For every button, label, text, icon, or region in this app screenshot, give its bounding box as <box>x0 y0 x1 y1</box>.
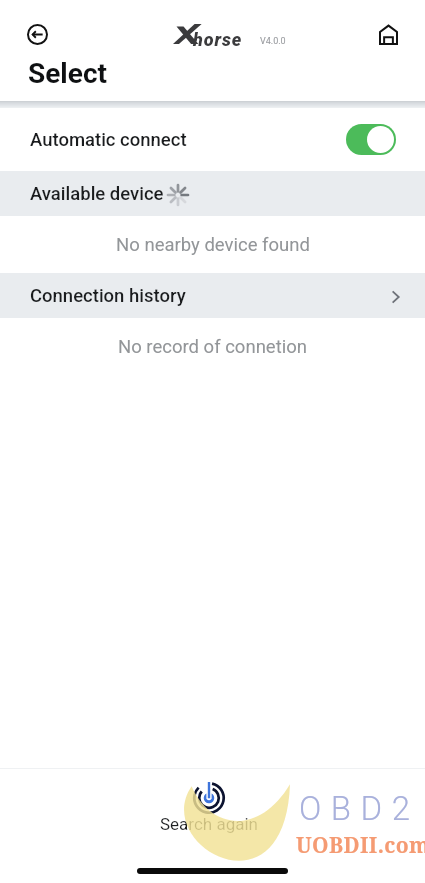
staticText: horse <box>193 29 243 50</box>
button[interactable]: Connection history <box>0 273 425 318</box>
staticText: Automatic connect <box>30 129 187 151</box>
button[interactable]: Automatic connect <box>0 108 425 171</box>
button[interactable]: Automatic connect toggle <box>346 124 396 155</box>
staticText: No record of connetion <box>118 336 307 358</box>
staticText: OBD2 <box>299 789 420 828</box>
staticText: UOBDII.com <box>296 831 425 860</box>
button[interactable]: Search again <box>160 778 258 834</box>
button[interactable]: Back <box>17 14 57 54</box>
button[interactable]: Available device <box>0 171 425 216</box>
staticText: No nearby device found <box>116 234 310 256</box>
staticText: Select <box>28 57 107 90</box>
button[interactable]: Home <box>368 14 408 54</box>
staticText: Search again <box>160 814 258 834</box>
staticText: V4.0.0 <box>260 36 286 47</box>
staticText: Available device <box>30 183 164 205</box>
staticText: Connection history <box>30 285 186 307</box>
